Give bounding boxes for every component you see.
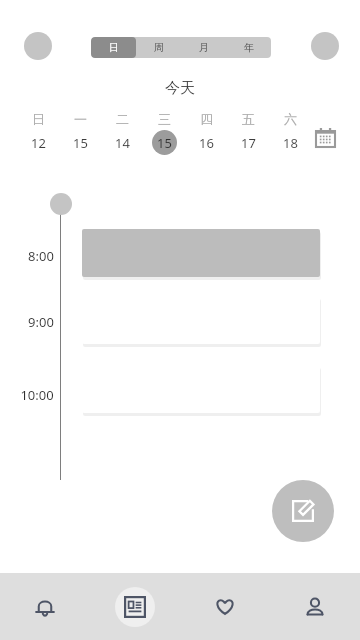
button[interactable]: 日 xyxy=(91,37,136,58)
staticText: 15 xyxy=(157,134,172,152)
staticText: 五 xyxy=(242,111,255,127)
button[interactable]: More options xyxy=(311,32,339,60)
button[interactable]: Favorites xyxy=(180,573,270,640)
button[interactable]: 四 xyxy=(189,111,223,155)
button[interactable]: 一 xyxy=(63,111,97,155)
staticText: 12 xyxy=(31,134,46,152)
staticText: 15 xyxy=(73,134,88,152)
staticText: 8:00 xyxy=(28,247,54,265)
button[interactable]: 二 xyxy=(105,111,139,155)
button[interactable]: Account xyxy=(270,573,360,640)
button[interactable]: 六 xyxy=(273,111,307,155)
button[interactable]: Create new event xyxy=(272,480,334,542)
button[interactable]: Open calendar xyxy=(314,126,336,148)
staticText: 日 xyxy=(109,41,119,54)
button[interactable]: 三 xyxy=(147,111,181,155)
button[interactable]: 五 xyxy=(231,111,265,155)
staticText: 10:00 xyxy=(20,386,54,404)
staticText: 一 xyxy=(74,111,87,127)
staticText: 18 xyxy=(283,134,298,152)
staticText: 周 xyxy=(154,41,164,54)
button[interactable]: Profile xyxy=(24,32,52,60)
staticText: 月 xyxy=(199,41,209,54)
button[interactable]: 周 xyxy=(136,37,181,58)
staticText: 年 xyxy=(244,41,254,54)
staticText: 16 xyxy=(199,134,214,152)
staticText: 17 xyxy=(241,134,256,152)
button[interactable]: Notifications xyxy=(0,573,90,640)
staticText: 二 xyxy=(116,111,129,127)
button[interactable]: 月 xyxy=(181,37,226,58)
button[interactable]: 年 xyxy=(226,37,271,58)
staticText: 六 xyxy=(284,111,297,127)
button[interactable]: 日 xyxy=(21,111,55,155)
staticText: 日 xyxy=(32,111,45,127)
staticText: 三 xyxy=(158,111,171,127)
staticText: 9:00 xyxy=(28,313,54,331)
staticText: 四 xyxy=(200,111,213,127)
staticText: 14 xyxy=(115,134,130,152)
button[interactable]: Feed xyxy=(90,573,180,640)
staticText: 今天 xyxy=(165,79,195,98)
